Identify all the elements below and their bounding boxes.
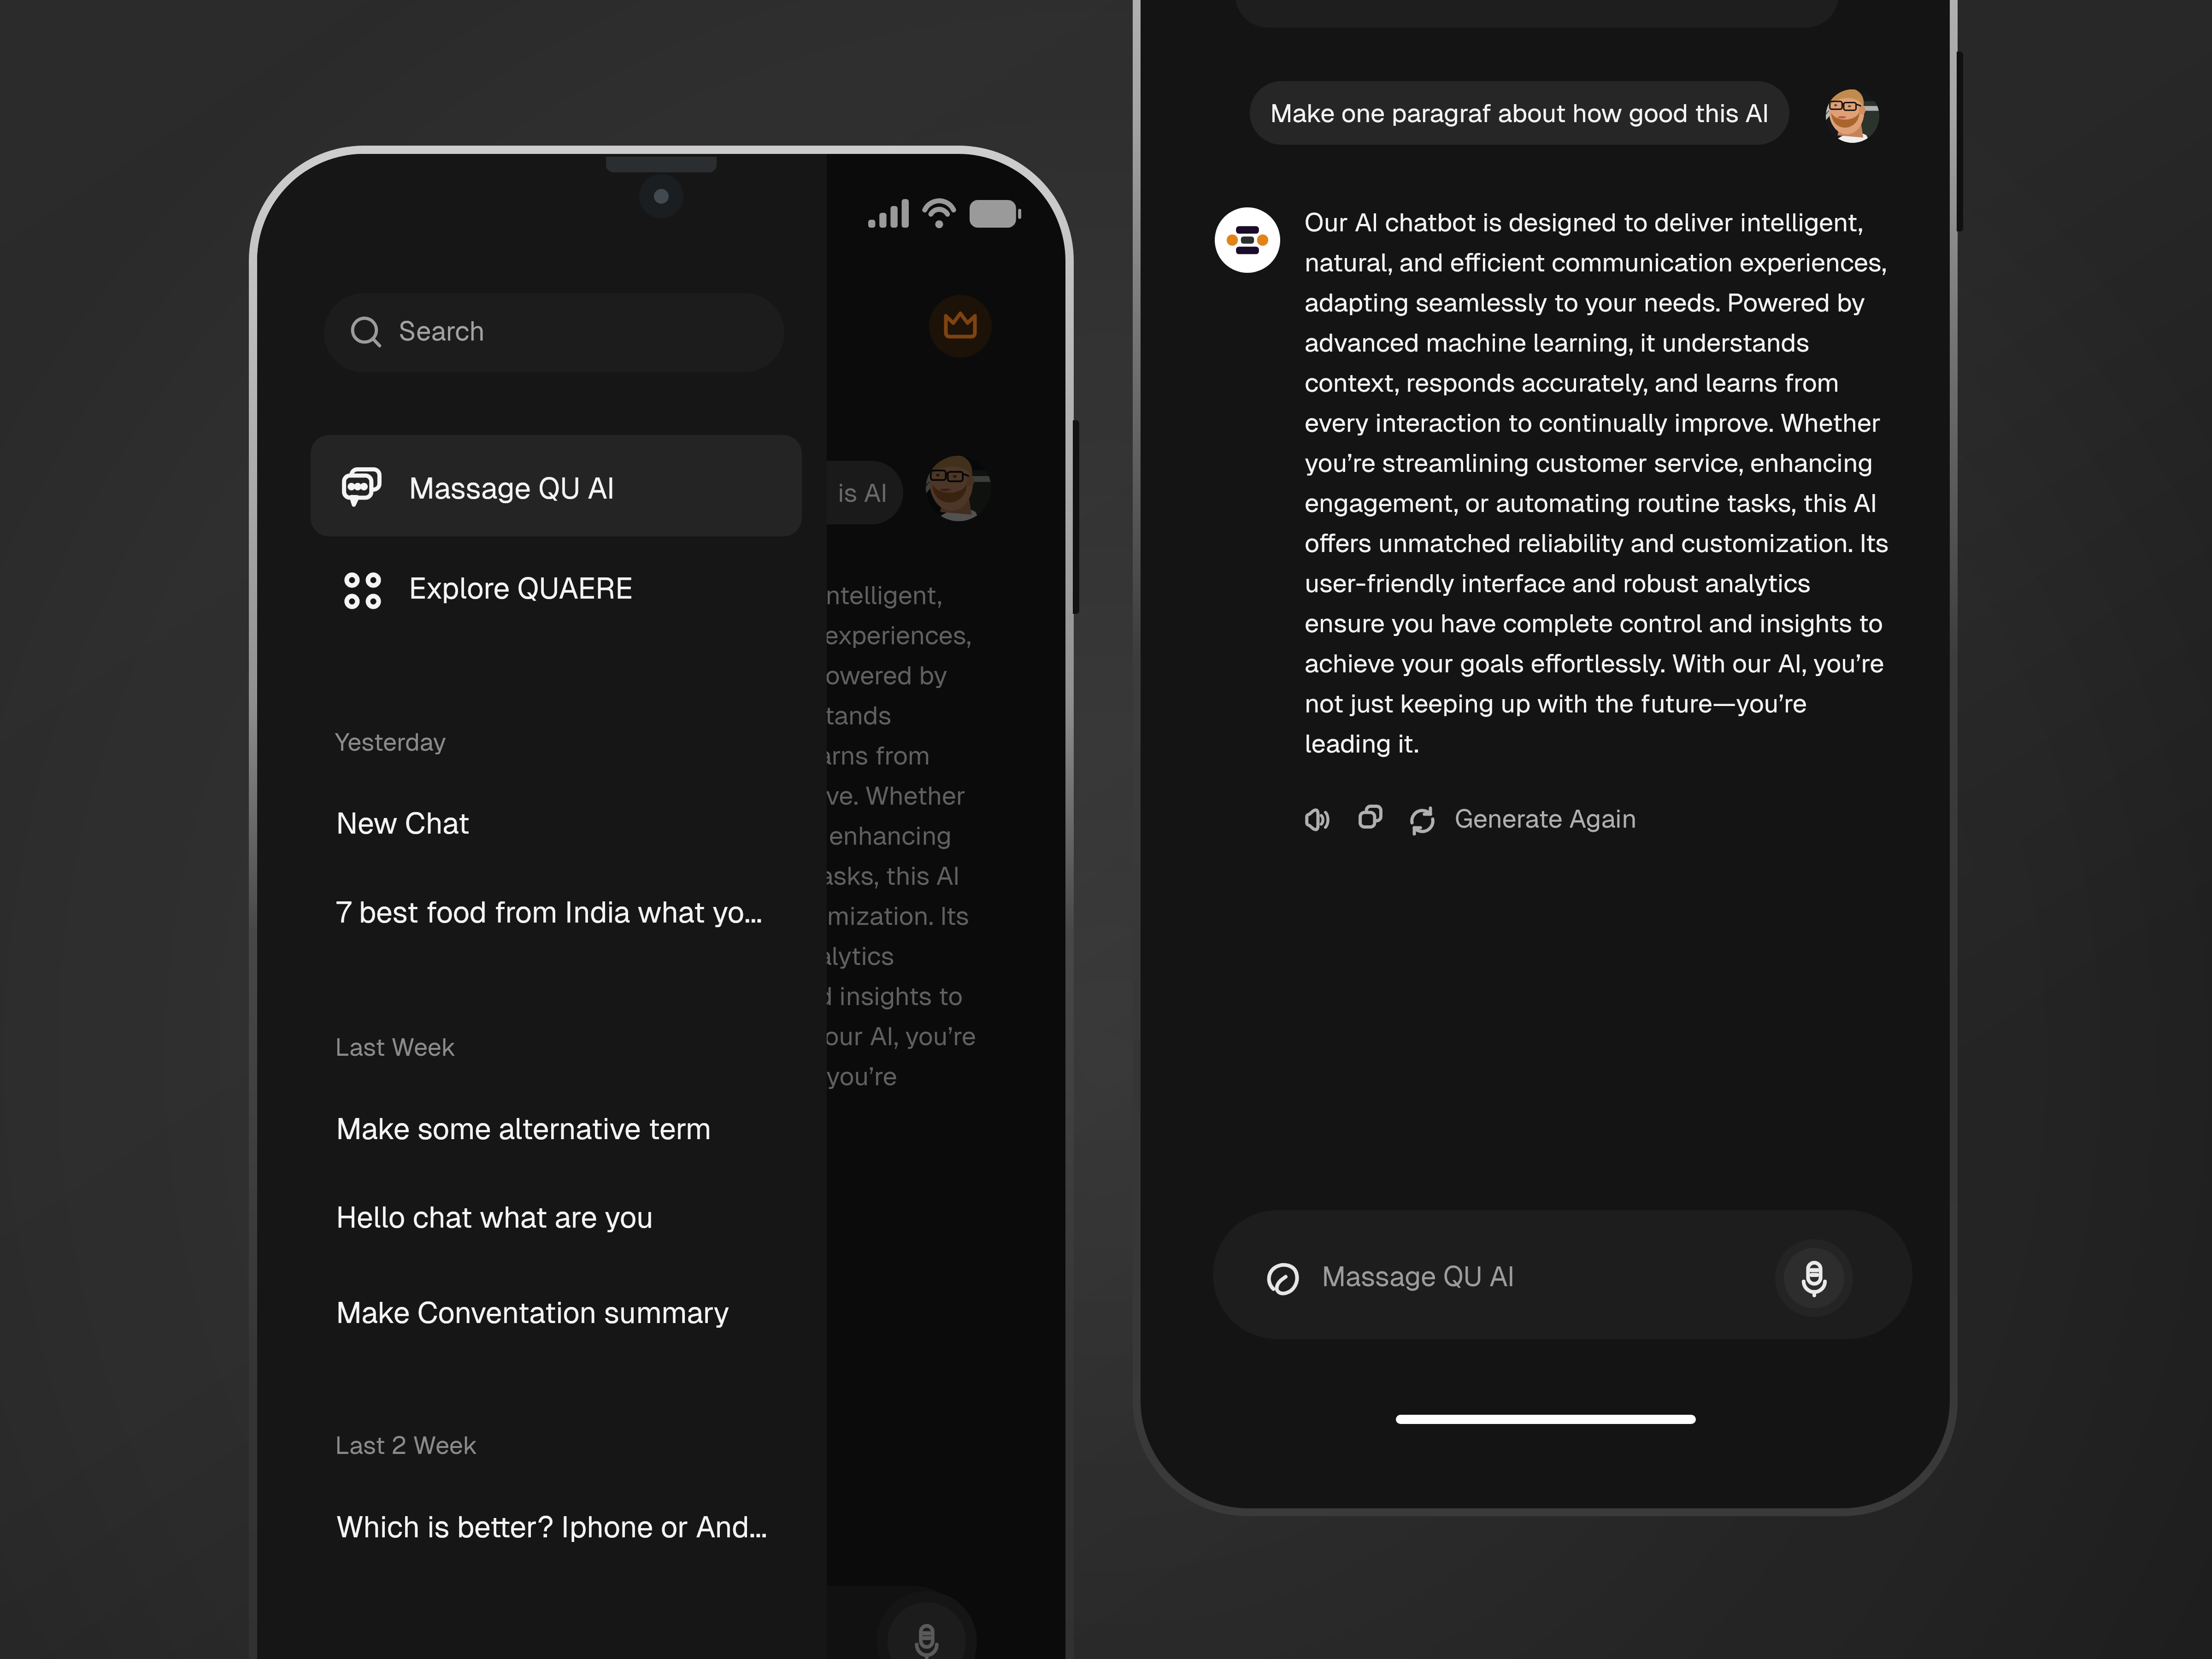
staticText: 7 best food from India what yo... — [336, 893, 762, 931]
staticText: Yesterday — [335, 726, 447, 758]
staticText: New Chat — [336, 804, 470, 842]
button[interactable]: New Chat — [257, 780, 827, 849]
staticText: r intelligent, n experiences, Powered by… — [803, 578, 977, 1093]
button[interactable]: Massage QU AI — [1213, 1210, 1912, 1339]
button[interactable]: Explore QUAERE — [311, 546, 802, 638]
button[interactable]: Search — [324, 293, 784, 372]
button[interactable]: Make Conventation summary — [257, 1270, 827, 1339]
staticText: is AI — [838, 476, 888, 510]
staticText: Last Week — [335, 1031, 456, 1063]
button[interactable]: Generate Again — [1409, 804, 1637, 838]
staticText: Make some alternative term — [336, 1110, 712, 1148]
staticText: Generate Again — [1455, 802, 1637, 835]
staticText: Search — [399, 314, 485, 348]
button[interactable]: Massage QU AI — [311, 435, 802, 536]
button[interactable]: Copy — [1358, 804, 1383, 829]
button[interactable]: Premium — [929, 295, 992, 358]
button[interactable]: Hello chat what are you — [257, 1174, 827, 1243]
button[interactable]: 7 best food from India what yo... — [257, 869, 827, 938]
staticText: Explore QUAERE — [409, 569, 633, 607]
button[interactable]: Which is better? Iphone or And... — [257, 1484, 827, 1553]
button[interactable]: Make one paragraf about how good this AI — [1250, 81, 1789, 145]
button[interactable]: Make some alternative term — [257, 1086, 827, 1155]
staticText: Which is better? Iphone or And... — [336, 1508, 767, 1546]
staticText: Make Conventation summary — [336, 1294, 729, 1332]
button[interactable]: Read aloud — [1306, 807, 1330, 832]
staticText: Hello chat what are you — [336, 1198, 653, 1236]
staticText: Massage QU AI — [1322, 1259, 1515, 1294]
staticText: Massage QU AI — [409, 469, 615, 507]
staticText: Make one paragraf about how good this AI — [1270, 96, 1769, 130]
staticText: Last 2 Week — [335, 1429, 478, 1461]
button[interactable]: Voice input — [1775, 1239, 1853, 1317]
staticText: Our AI chatbot is designed to deliver in… — [1305, 206, 1889, 760]
